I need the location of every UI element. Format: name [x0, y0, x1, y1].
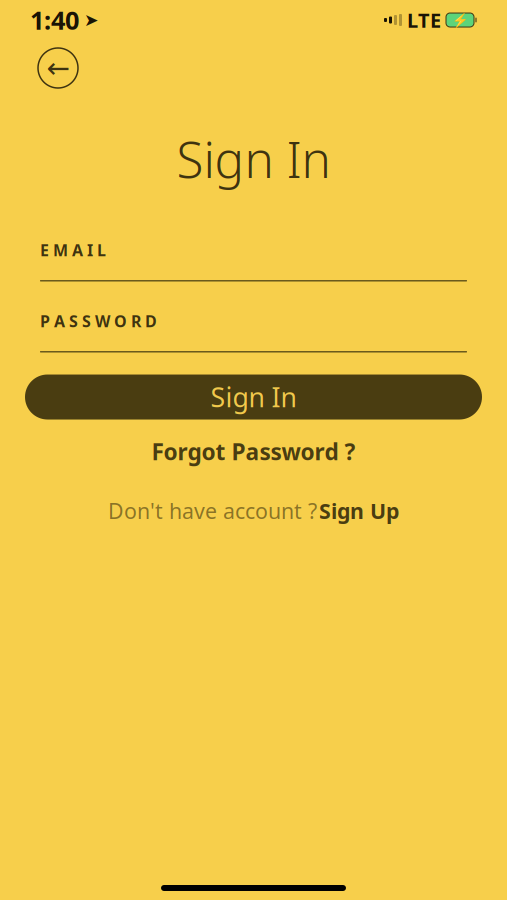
- button[interactable]: Forgot Password ?: [143, 432, 363, 471]
- staticText: Sign Up: [319, 497, 399, 525]
- staticText: Sign In: [210, 379, 296, 415]
- staticText: Sign In: [176, 126, 330, 191]
- staticText: ➤: [84, 10, 99, 30]
- staticText: 1:40: [30, 3, 79, 37]
- staticText: E M A I L: [40, 239, 106, 261]
- staticText: Forgot Password ?: [151, 436, 355, 467]
- button[interactable]: Back: [36, 46, 80, 90]
- staticText: ⚡: [451, 12, 468, 28]
- staticText: LTE: [407, 7, 441, 33]
- staticText: P A S S W O R D: [40, 310, 157, 332]
- button[interactable]: Sign In: [25, 374, 482, 419]
- staticText: ←: [46, 52, 69, 84]
- staticText: Don't have account ?: [108, 497, 317, 525]
- button[interactable]: Sign Up: [319, 493, 399, 529]
